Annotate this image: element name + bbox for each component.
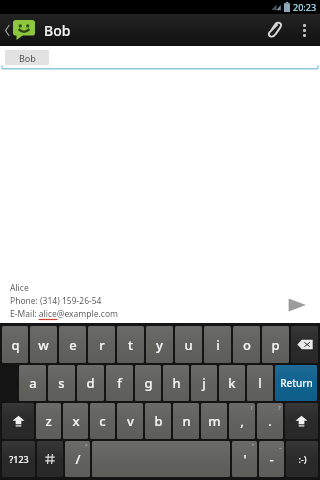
staticText: h (172, 374, 181, 392)
button[interactable]: Return (275, 365, 317, 401)
button[interactable]: z (36, 403, 61, 439)
button[interactable]: c (90, 403, 115, 439)
button[interactable]: n (173, 403, 199, 439)
staticText: ' (243, 450, 247, 468)
button[interactable]: Shift (2, 403, 34, 439)
button[interactable]: i (204, 326, 231, 363)
button[interactable]: x (63, 403, 88, 439)
button[interactable]: q (2, 326, 28, 363)
button[interactable]: , (229, 403, 255, 439)
button[interactable]: Shift (285, 403, 318, 439)
button[interactable]: f (106, 365, 133, 401)
button[interactable]: Backspace (291, 326, 318, 363)
button[interactable]: w (30, 326, 57, 363)
staticText: s (58, 374, 65, 392)
staticText: x (72, 412, 80, 430)
button[interactable]: h (163, 365, 189, 401)
button[interactable]: Space (92, 441, 230, 477)
staticText: v (127, 412, 134, 430)
staticText: k (228, 374, 236, 392)
button[interactable]: - (259, 441, 284, 477)
button[interactable]: o (233, 326, 260, 363)
staticText: o (243, 336, 251, 354)
staticText: 20:23 (293, 1, 317, 13)
staticText: q (11, 336, 20, 354)
staticText: n (182, 412, 191, 430)
button[interactable]: Bob (0, 46, 320, 70)
staticText: Phone: (314) 159-26-54 (10, 295, 102, 307)
staticText: u (184, 336, 193, 354)
staticText: b (154, 412, 163, 430)
button[interactable]: b (145, 403, 171, 439)
staticText: z (45, 412, 52, 430)
button[interactable]: g (135, 365, 161, 401)
staticText: p (271, 336, 280, 354)
staticText: " (252, 442, 255, 450)
staticText: m (208, 412, 221, 430)
button[interactable]: Change input method (37, 441, 63, 477)
button[interactable]: r (88, 326, 115, 363)
staticText: Alice (10, 282, 29, 294)
staticText: :-) (298, 453, 307, 465)
button[interactable]: v (117, 403, 143, 439)
staticText: w (38, 336, 49, 354)
staticText: d (86, 374, 95, 392)
button[interactable]: k (219, 365, 245, 401)
button[interactable]: d (77, 365, 104, 401)
staticText: , (240, 412, 244, 430)
button[interactable]: s (48, 365, 75, 401)
button[interactable]: t (117, 326, 144, 363)
button[interactable]: ' (232, 441, 257, 477)
button[interactable]: Send (280, 290, 314, 320)
staticText: ?123 (9, 453, 29, 465)
button[interactable]: ?123 (2, 441, 35, 477)
button[interactable]: l (247, 365, 273, 401)
staticText: Bob (44, 21, 71, 40)
staticText: ! (251, 404, 253, 412)
staticText: j (202, 374, 206, 392)
staticText: - (269, 450, 274, 468)
button[interactable]: Alice (10, 282, 280, 320)
button[interactable]: u (175, 326, 202, 363)
staticText: c (99, 412, 106, 430)
button[interactable]: / (65, 441, 90, 477)
staticText: t (128, 336, 133, 354)
staticText: ° (85, 442, 88, 450)
button[interactable]: :-) (286, 441, 318, 477)
button[interactable]: y (146, 326, 173, 363)
staticText: r (99, 336, 105, 354)
button[interactable]: e (59, 326, 86, 363)
staticText: a (29, 374, 37, 392)
staticText: e (69, 336, 77, 354)
staticText: i (216, 336, 220, 354)
staticText: _ (279, 442, 282, 450)
staticText: y (156, 336, 163, 354)
staticText: ? (278, 404, 281, 412)
staticText: Return (280, 376, 313, 390)
staticText: f (117, 374, 122, 392)
button[interactable]: Bob (2, 14, 74, 46)
staticText: / (75, 450, 81, 468)
button[interactable]: m (201, 403, 227, 439)
staticText: g (144, 374, 153, 392)
button[interactable]: a (19, 365, 46, 401)
staticText: . (268, 412, 272, 430)
staticText: l (258, 374, 262, 392)
button[interactable]: p (262, 326, 289, 363)
staticText: Bob (19, 52, 36, 64)
button[interactable]: More options (292, 14, 316, 46)
button[interactable]: Attach (256, 14, 292, 46)
button[interactable]: . (257, 403, 283, 439)
staticText: E-Mail: alice@example.com (10, 308, 118, 320)
button[interactable]: j (191, 365, 217, 401)
